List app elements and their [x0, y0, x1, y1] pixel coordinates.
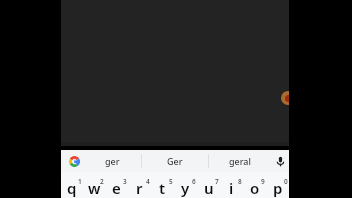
- staticText: r: [136, 178, 143, 198]
- staticText: 8: [238, 177, 242, 186]
- button[interactable]: Voice input: [273, 150, 289, 172]
- staticText: w: [88, 178, 101, 198]
- staticText: u: [204, 178, 214, 198]
- staticText: e: [112, 178, 121, 198]
- staticText: y: [181, 178, 190, 198]
- button[interactable]: ger: [83, 150, 141, 172]
- button[interactable]: u: [197, 172, 220, 198]
- staticText: 0: [284, 177, 288, 186]
- button[interactable]: t: [151, 172, 174, 198]
- staticText: p: [273, 178, 283, 198]
- button[interactable]: Record: [281, 91, 289, 105]
- staticText: 2: [100, 177, 104, 186]
- staticText: 3: [123, 177, 127, 186]
- button[interactable]: geral: [209, 150, 273, 172]
- button[interactable]: p: [266, 172, 289, 198]
- staticText: 1: [78, 177, 82, 186]
- staticText: 7: [215, 177, 219, 186]
- staticText: 6: [192, 177, 196, 186]
- button[interactable]: Google search: [69, 156, 80, 167]
- button[interactable]: Video surface: [61, 0, 289, 146]
- button[interactable]: o: [243, 172, 266, 198]
- staticText: t: [159, 178, 166, 198]
- staticText: Ger: [167, 155, 183, 167]
- button[interactable]: Ger: [142, 150, 208, 172]
- button[interactable]: i: [220, 172, 243, 198]
- staticText: ger: [105, 155, 120, 167]
- button[interactable]: y: [174, 172, 197, 198]
- staticText: o: [250, 178, 260, 198]
- button[interactable]: r: [128, 172, 151, 198]
- button[interactable]: e: [105, 172, 128, 198]
- staticText: i: [229, 178, 234, 198]
- button[interactable]: q: [61, 172, 83, 198]
- staticText: 5: [169, 177, 173, 186]
- staticText: q: [67, 178, 77, 198]
- staticText: geral: [229, 155, 251, 167]
- staticText: 9: [261, 177, 265, 186]
- button[interactable]: w: [83, 172, 105, 198]
- staticText: 4: [146, 177, 150, 186]
